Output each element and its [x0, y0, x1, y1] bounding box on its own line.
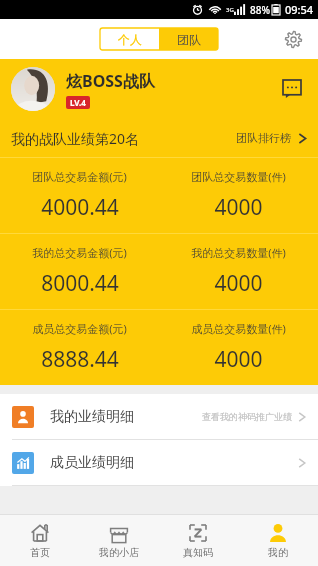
staticText: 个人 — [118, 32, 142, 47]
staticText: 8000.44 — [41, 269, 119, 298]
button[interactable]: Messages — [277, 74, 307, 104]
staticText: 我的战队业绩第20名 — [11, 129, 140, 148]
button[interactable]: 成员业绩明细 — [0, 440, 318, 485]
staticText: 团队 — [177, 32, 201, 47]
staticText: 查看我的神码推广业绩 — [202, 411, 292, 422]
button[interactable]: 首页 — [0, 515, 79, 566]
button[interactable]: 个人 — [100, 28, 159, 50]
staticText: 首页 — [30, 546, 50, 559]
button[interactable]: 团队 — [159, 28, 218, 50]
staticText: 我的小店 — [99, 546, 139, 559]
staticText: 炫BOSS战队 — [66, 70, 155, 92]
staticText: 我的 — [268, 546, 288, 559]
staticText: 8888.44 — [41, 345, 119, 374]
staticText: 我的总交易金额(元) — [32, 245, 127, 260]
staticText: 3G — [226, 6, 234, 14]
staticText: 团队排行榜 — [236, 131, 291, 145]
staticText: 成员总交易数量(件) — [191, 321, 286, 336]
staticText: 成员总交易金额(元) — [32, 321, 127, 336]
staticText: 真知码 — [183, 546, 213, 559]
staticText: 09:54 — [285, 2, 314, 17]
button[interactable]: 我的小店 — [79, 515, 158, 566]
staticText: 成员业绩明细 — [50, 454, 134, 472]
button[interactable]: 我的业绩明细 — [0, 394, 318, 439]
button[interactable]: 炫BOSS战队 — [0, 59, 318, 119]
staticText: 我的总交易数量(件) — [191, 245, 286, 260]
staticText: 4000.44 — [41, 193, 119, 222]
staticText: 4000 — [214, 345, 263, 374]
staticText: 88% — [250, 3, 270, 17]
staticText: 4000 — [214, 193, 263, 222]
button[interactable]: 我的战队业绩第20名 — [0, 119, 318, 157]
button[interactable]: 我的 — [238, 515, 318, 566]
staticText: 团队总交易数量(件) — [191, 169, 286, 184]
staticText: 我的业绩明细 — [50, 408, 134, 426]
staticText: LV.4 — [70, 97, 86, 108]
button[interactable]: Settings — [278, 24, 308, 54]
staticText: 团队总交易金额(元) — [32, 169, 127, 184]
staticText: 4000 — [214, 269, 263, 298]
button[interactable]: 真知码 — [158, 515, 238, 566]
